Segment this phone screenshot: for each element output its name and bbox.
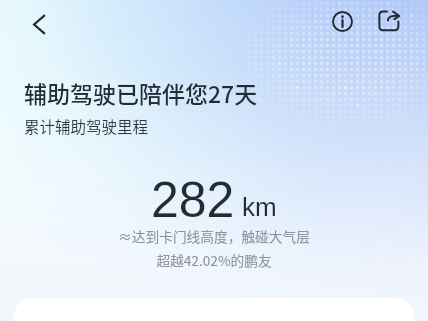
staticText: 累计辅助驾驶里程 <box>24 115 149 137</box>
staticText: 超越42.02%的鹏友 <box>0 250 428 270</box>
staticText: km <box>242 192 277 221</box>
button[interactable]: Info <box>320 0 364 43</box>
button[interactable]: Back <box>15 0 63 48</box>
button[interactable]: Share <box>367 0 411 44</box>
staticText: 辅助驾驶已陪伴您27天 <box>24 76 258 109</box>
staticText: 282 <box>151 172 235 228</box>
staticText: ≈达到卡门线高度，触碰大气层 <box>0 226 428 246</box>
